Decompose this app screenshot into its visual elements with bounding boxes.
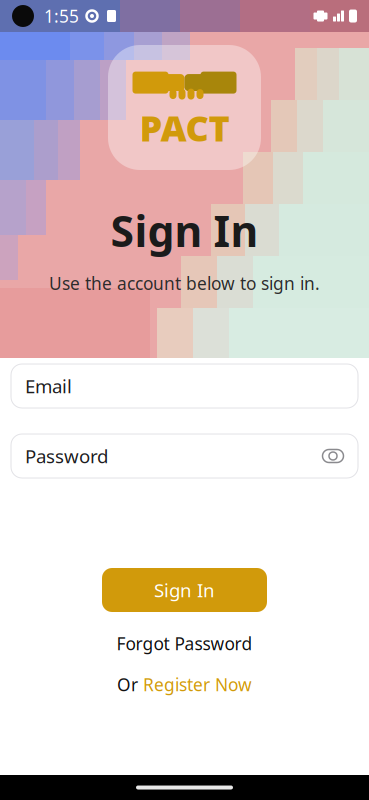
staticText: Sign In — [110, 202, 258, 259]
button[interactable]: Register Now — [143, 669, 252, 700]
staticText: Sign In — [154, 578, 215, 602]
staticText: Use the account below to sign in. — [49, 272, 320, 295]
staticText: Register Now — [143, 673, 252, 696]
staticText: Password — [25, 444, 108, 468]
button[interactable]: Show password — [322, 435, 358, 477]
button[interactable]: Forgot Password — [106, 626, 262, 661]
staticText: 1:55 — [44, 4, 79, 27]
staticText: Email — [25, 374, 72, 398]
staticText: Forgot Password — [116, 632, 252, 655]
staticText: PACT — [139, 104, 229, 151]
button[interactable]: Sign In — [102, 568, 267, 612]
staticText: Or — [117, 673, 138, 696]
